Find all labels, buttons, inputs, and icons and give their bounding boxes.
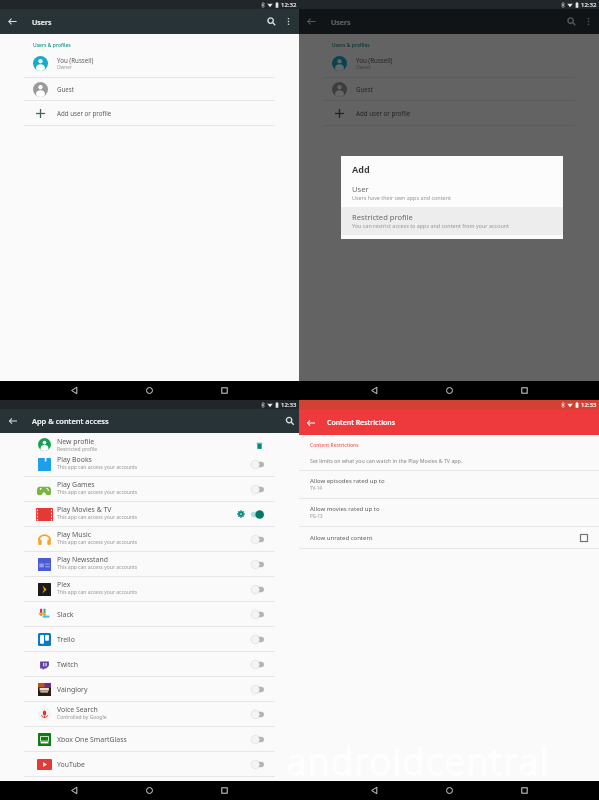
button[interactable] [250,556,265,572]
staticText: Play Music [57,530,92,539]
button[interactable]: Restricted profile [341,207,563,235]
button[interactable]: Recents [487,781,562,800]
button[interactable]: Vainglory [0,677,299,701]
staticText: Vainglory [57,685,88,694]
button[interactable]: Allow episodes rated up to [299,471,599,498]
staticText: Xbox One SmartGlass [57,735,127,744]
button[interactable]: Allow unrated content [299,527,599,548]
staticText: Play Movies & TV [57,505,112,514]
staticText: Play Books [57,455,92,464]
button[interactable]: Voice Search [0,702,299,726]
button[interactable]: Back [337,381,412,400]
button[interactable]: Home [412,381,487,400]
button[interactable]: Recents [187,381,262,400]
button[interactable]: Guest [299,78,599,100]
button[interactable]: Search [282,413,298,429]
staticText: Owner [356,64,371,70]
button[interactable]: Slack [0,602,299,626]
staticText: Allow episodes rated up to [310,477,385,485]
button[interactable]: Plex [0,577,299,601]
staticText: Content Restrictions [327,418,396,428]
button[interactable]: Back [337,781,412,800]
staticText: 12:33 [281,401,297,409]
staticText: Users & profiles [332,42,370,49]
button[interactable]: Delete [253,439,265,451]
staticText: YouTube [57,760,85,769]
staticText: Controlled by Google [57,714,107,721]
staticText: App & content access [32,416,109,426]
staticText: You (Russell) [356,56,393,64]
button[interactable]: Home [112,381,187,400]
button[interactable] [250,706,265,722]
staticText: Trello [57,635,75,644]
staticText: Add user or profile [57,109,112,117]
button[interactable]: Play Games [0,477,299,501]
staticText: 12:32 [281,1,297,9]
staticText: TV-14 [310,485,322,491]
staticText: Play Games [57,480,95,489]
staticText: 12:33 [581,401,597,409]
button[interactable] [250,456,265,472]
button[interactable]: Back [37,381,112,400]
button[interactable]: Allow movies rated up to [299,499,599,526]
staticText: Users [32,17,52,27]
button[interactable]: Xbox One SmartGlass [0,727,299,751]
button[interactable]: Search [263,13,280,30]
staticText: Allow movies rated up to [310,505,380,513]
button[interactable]: Play Newsstand [0,552,299,576]
button[interactable]: Recents [487,381,562,400]
button[interactable]: Back [303,415,319,431]
button[interactable] [250,756,265,772]
staticText: New profile [57,437,95,446]
button[interactable]: You (Russell) [0,49,299,77]
button[interactable]: Play Music [0,527,299,551]
staticText: Guest [356,85,374,93]
button[interactable]: Guest [0,78,299,100]
button[interactable] [250,506,265,522]
button[interactable] [250,656,265,672]
staticText: Users have their own apps and content [352,194,451,201]
button[interactable]: YouTube [0,752,299,776]
button[interactable]: Back [37,781,112,800]
button[interactable]: Play Movies & TV [0,502,299,526]
staticText: Allow unrated content [310,534,580,542]
staticText: User [352,184,369,194]
button[interactable] [250,481,265,497]
button[interactable]: Search [563,13,580,30]
button[interactable]: Play Books [0,452,299,476]
staticText: Restricted profile [352,212,413,222]
button[interactable]: Back [5,413,21,429]
staticText: Guest [57,85,75,93]
staticText: Content Restrictions [310,442,359,449]
button[interactable] [250,681,265,697]
button[interactable]: Home [112,781,187,800]
staticText: Restricted profile [57,446,98,453]
button[interactable] [250,606,265,622]
staticText: Plex [57,580,71,589]
staticText: This app can access your accounts [57,589,138,596]
button[interactable]: Trello [0,627,299,651]
staticText: Slack [57,610,74,619]
button[interactable] [250,531,265,547]
staticText: androidcentral [287,737,551,786]
button[interactable]: Recents [187,781,262,800]
button[interactable]: Add user or profile [0,101,299,125]
button[interactable]: Twitch [0,652,299,676]
staticText: You (Russell) [57,56,94,64]
button[interactable]: Home [412,781,487,800]
staticText: Add user or profile [356,109,411,117]
button[interactable] [250,631,265,647]
button[interactable]: More options [280,13,297,30]
button[interactable]: You (Russell) [299,49,599,77]
button[interactable] [250,581,265,597]
button[interactable]: Add user or profile [299,101,599,125]
button[interactable]: More options [580,13,597,30]
button[interactable]: Back [4,13,21,30]
staticText: This app can access your accounts [57,489,138,496]
button[interactable]: Settings [235,508,247,520]
button[interactable]: Back [303,13,320,30]
staticText: Users & profiles [33,42,71,49]
button[interactable] [250,731,265,747]
button[interactable]: User [341,184,563,207]
staticText: Users [331,17,351,27]
